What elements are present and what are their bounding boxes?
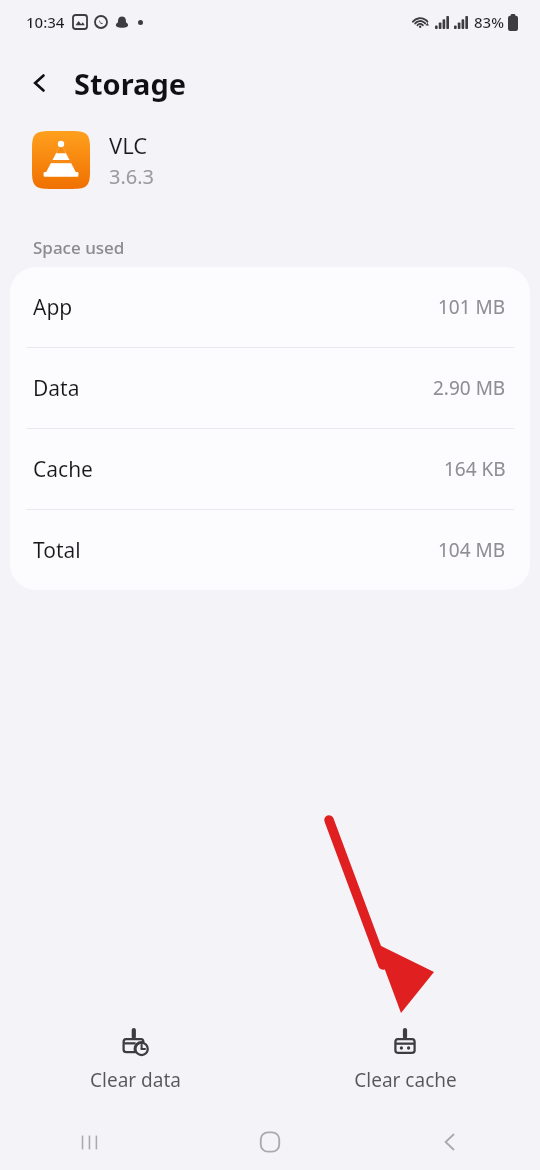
staticText: 2.90 MB <box>433 375 506 401</box>
staticText: 83% <box>474 12 504 32</box>
staticText: 10:34 <box>26 12 65 32</box>
staticText: 3.6.3 <box>109 163 155 190</box>
staticText: Total <box>33 536 81 565</box>
staticText: App <box>33 293 73 322</box>
button[interactable]: Back <box>360 1114 540 1170</box>
button[interactable]: Data <box>10 348 530 428</box>
staticText: Clear data <box>90 1067 181 1093</box>
staticText: Cache <box>33 455 93 484</box>
staticText: 104 MB <box>438 537 506 563</box>
staticText: VLC <box>109 130 148 160</box>
staticText: Clear cache <box>354 1067 457 1093</box>
button[interactable]: Home <box>180 1114 360 1170</box>
staticText: 101 MB <box>438 294 506 320</box>
button[interactable]: Clear data <box>0 1006 270 1114</box>
staticText: Storage <box>74 64 187 103</box>
button[interactable]: Back <box>16 59 64 107</box>
button[interactable]: Cache <box>10 429 530 509</box>
button[interactable]: Recents <box>0 1114 180 1170</box>
staticText: Data <box>33 374 80 403</box>
button[interactable]: Clear cache <box>270 1006 540 1114</box>
staticText: Space used <box>33 236 125 259</box>
button[interactable]: Total <box>10 510 530 590</box>
button[interactable]: App <box>10 267 530 347</box>
staticText: 164 KB <box>444 456 506 482</box>
